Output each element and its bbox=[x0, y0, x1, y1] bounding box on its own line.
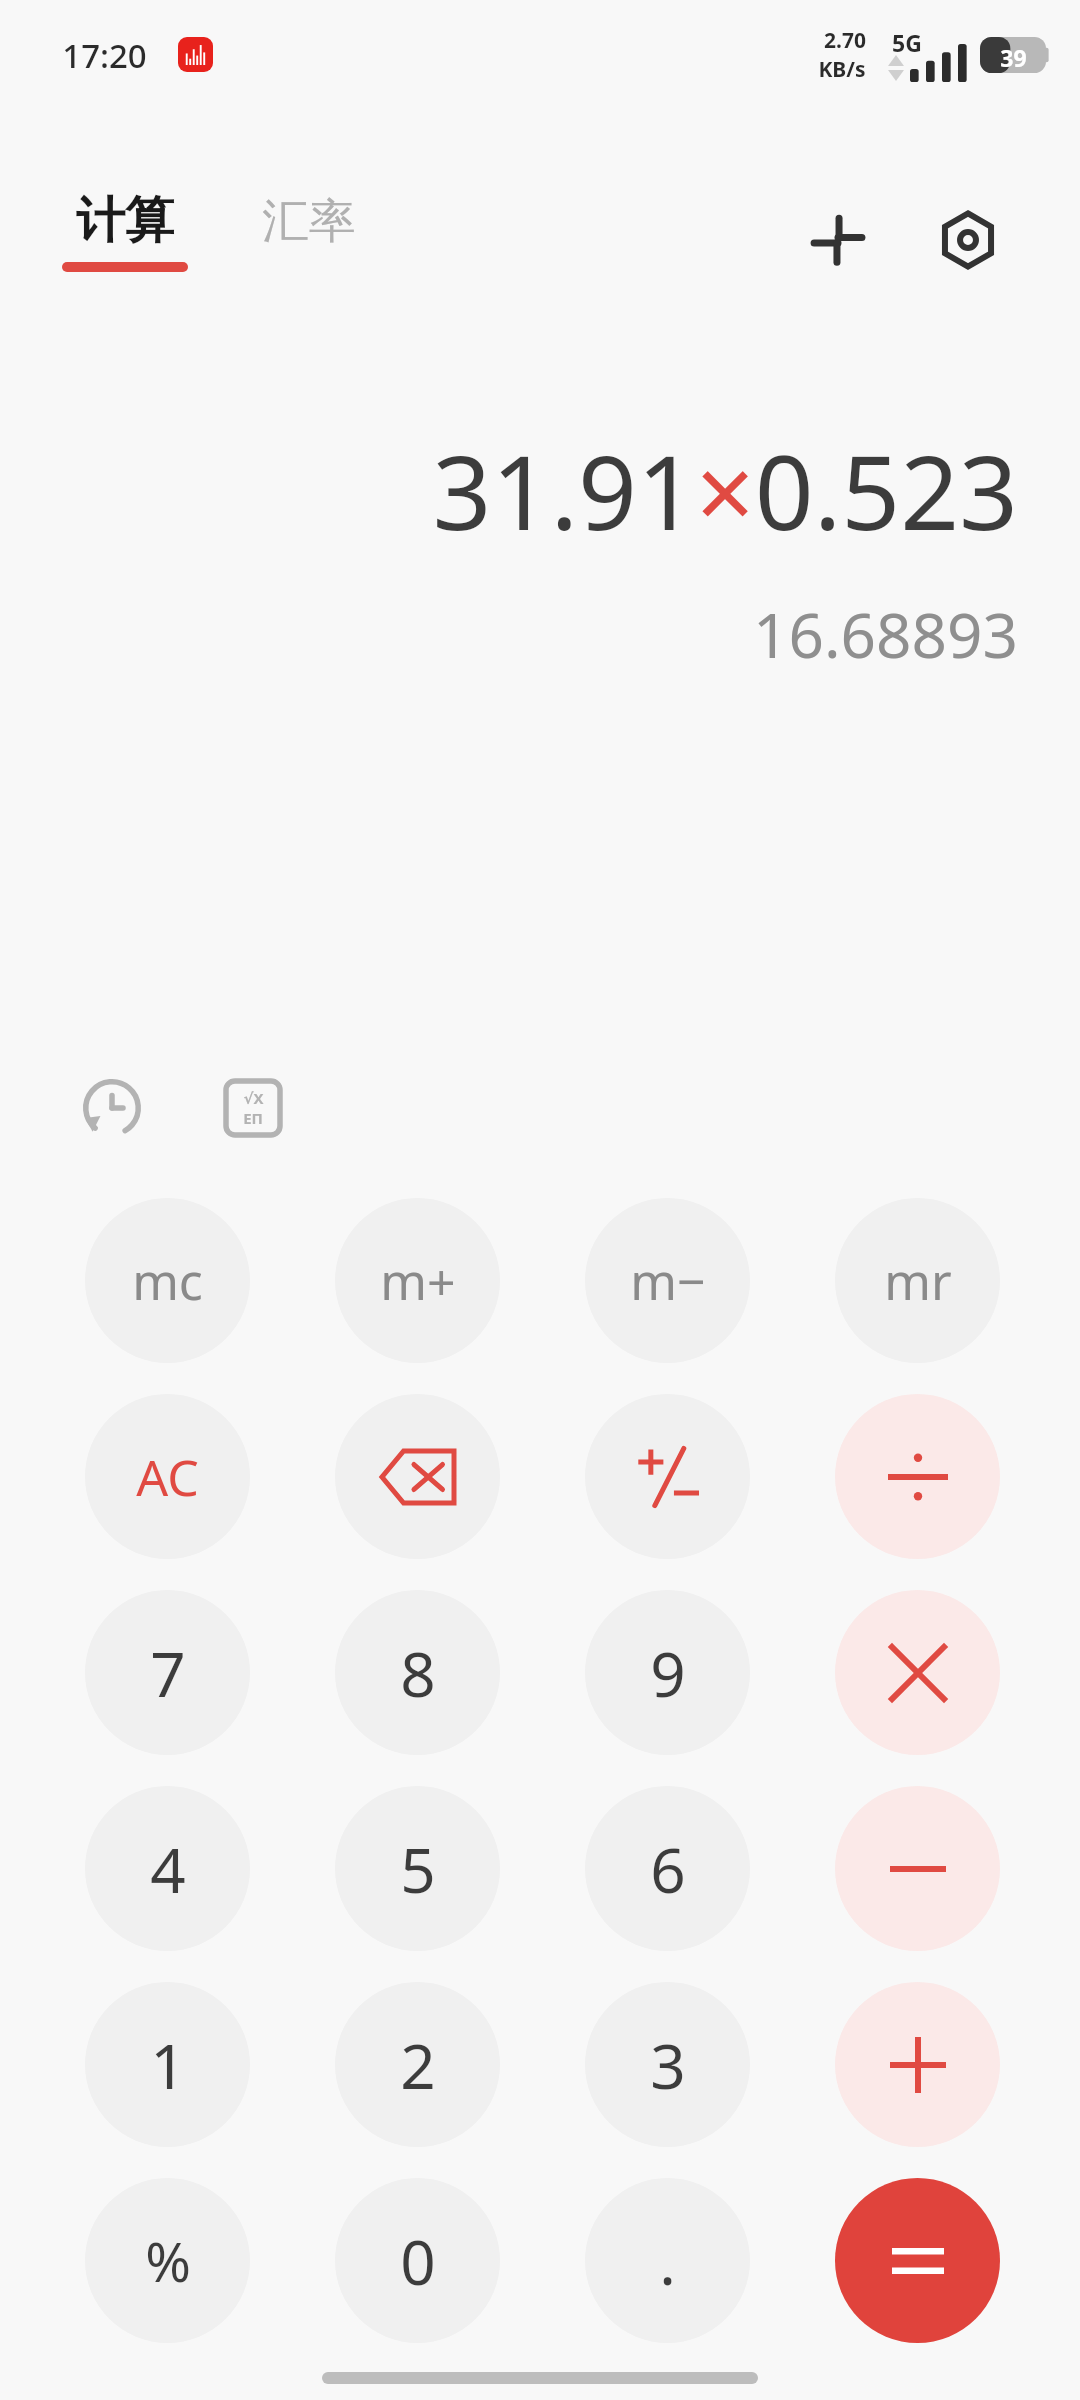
button[interactable]: 8 bbox=[335, 1590, 500, 1755]
button[interactable]: . bbox=[585, 2178, 750, 2343]
staticText: 2.70 bbox=[824, 26, 866, 55]
button[interactable]: 计算 bbox=[62, 190, 188, 272]
button[interactable]: 7 bbox=[85, 1590, 250, 1755]
staticText: 2 bbox=[400, 2023, 436, 2107]
staticText: √X bbox=[243, 1088, 264, 1108]
staticText: EΠ bbox=[243, 1108, 263, 1128]
button[interactable]: Minus bbox=[835, 1786, 1000, 1951]
button[interactable]: Collapse bbox=[790, 192, 886, 288]
staticText: m+ bbox=[380, 1247, 456, 1315]
button[interactable]: % bbox=[85, 2178, 250, 2343]
button[interactable]: 4 bbox=[85, 1786, 250, 1951]
staticText: 16.68893 bbox=[753, 592, 1018, 676]
staticText: 8 bbox=[400, 1631, 436, 1715]
staticText: 31.91×0.523 bbox=[432, 420, 1018, 560]
button[interactable]: 5 bbox=[335, 1786, 500, 1951]
staticText: 计算 bbox=[76, 190, 174, 252]
staticText: 4 bbox=[150, 1827, 186, 1911]
button[interactable]: m− bbox=[585, 1198, 750, 1363]
staticText: AC bbox=[136, 1443, 199, 1511]
staticText: 17:20 bbox=[62, 33, 147, 78]
button[interactable]: Backspace bbox=[335, 1394, 500, 1559]
staticText: mr bbox=[884, 1247, 952, 1315]
button[interactable]: History bbox=[64, 1060, 160, 1156]
button[interactable]: 0 bbox=[335, 2178, 500, 2343]
staticText: 汇率 bbox=[262, 192, 356, 251]
button[interactable]: Plus bbox=[835, 1982, 1000, 2147]
staticText: KB/s bbox=[818, 55, 866, 84]
staticText: 5 bbox=[400, 1827, 436, 1911]
button[interactable]: 汇率 bbox=[262, 192, 356, 251]
button[interactable]: Scientific bbox=[205, 1060, 301, 1156]
button[interactable]: 9 bbox=[585, 1590, 750, 1755]
staticText: mc bbox=[132, 1247, 203, 1315]
staticText: m− bbox=[630, 1247, 706, 1315]
staticText: 3 bbox=[650, 2023, 686, 2107]
staticText: 5G bbox=[892, 27, 922, 58]
staticText: . bbox=[659, 2219, 676, 2303]
button[interactable]: m+ bbox=[335, 1198, 500, 1363]
button[interactable]: Plus minus bbox=[585, 1394, 750, 1559]
staticText: 7 bbox=[150, 1631, 186, 1715]
button[interactable]: mr bbox=[835, 1198, 1000, 1363]
staticText: 6 bbox=[650, 1827, 686, 1911]
staticText: % bbox=[145, 2223, 191, 2298]
button[interactable]: 3 bbox=[585, 1982, 750, 2147]
button[interactable]: Equals bbox=[835, 2178, 1000, 2343]
staticText: 39 bbox=[1000, 42, 1027, 73]
staticText: 0 bbox=[400, 2219, 436, 2303]
button[interactable]: Multiply bbox=[835, 1590, 1000, 1755]
button[interactable]: 1 bbox=[85, 1982, 250, 2147]
button[interactable]: 6 bbox=[585, 1786, 750, 1951]
button[interactable]: AC bbox=[85, 1394, 250, 1559]
staticText: 1 bbox=[150, 2023, 186, 2107]
staticText: 9 bbox=[650, 1631, 686, 1715]
button[interactable]: mc bbox=[85, 1198, 250, 1363]
button[interactable]: 2 bbox=[335, 1982, 500, 2147]
button[interactable]: Settings bbox=[920, 192, 1016, 288]
button[interactable]: Divide bbox=[835, 1394, 1000, 1559]
